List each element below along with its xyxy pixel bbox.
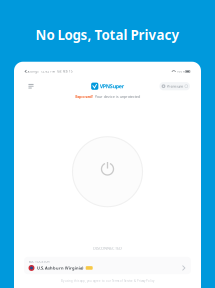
staticText: 100% <box>176 70 184 73</box>
staticText: Settings <box>27 70 38 73</box>
button[interactable]: SELECT LOCATION <box>14 257 201 274</box>
staticText: U.S. Ashburn (Virginia) <box>37 265 83 271</box>
staticText: 12:42 PM <box>41 70 55 73</box>
button[interactable]: Menu <box>25 81 37 92</box>
staticText: VPNSuper <box>100 83 124 90</box>
staticText: SELECT LOCATION <box>28 260 49 263</box>
button[interactable]: Premium <box>159 82 190 90</box>
staticText: Exposed! <box>75 94 93 99</box>
staticText: Tue Feb 15 <box>57 70 73 73</box>
staticText: Premium <box>167 83 184 89</box>
staticText: No Logs, Total Privacy <box>35 26 179 44</box>
staticText: DISCONNECTED <box>93 245 122 251</box>
staticText: By using this app, you agree to our Term… <box>61 279 154 283</box>
staticText: Your device is unprotected <box>95 94 140 99</box>
